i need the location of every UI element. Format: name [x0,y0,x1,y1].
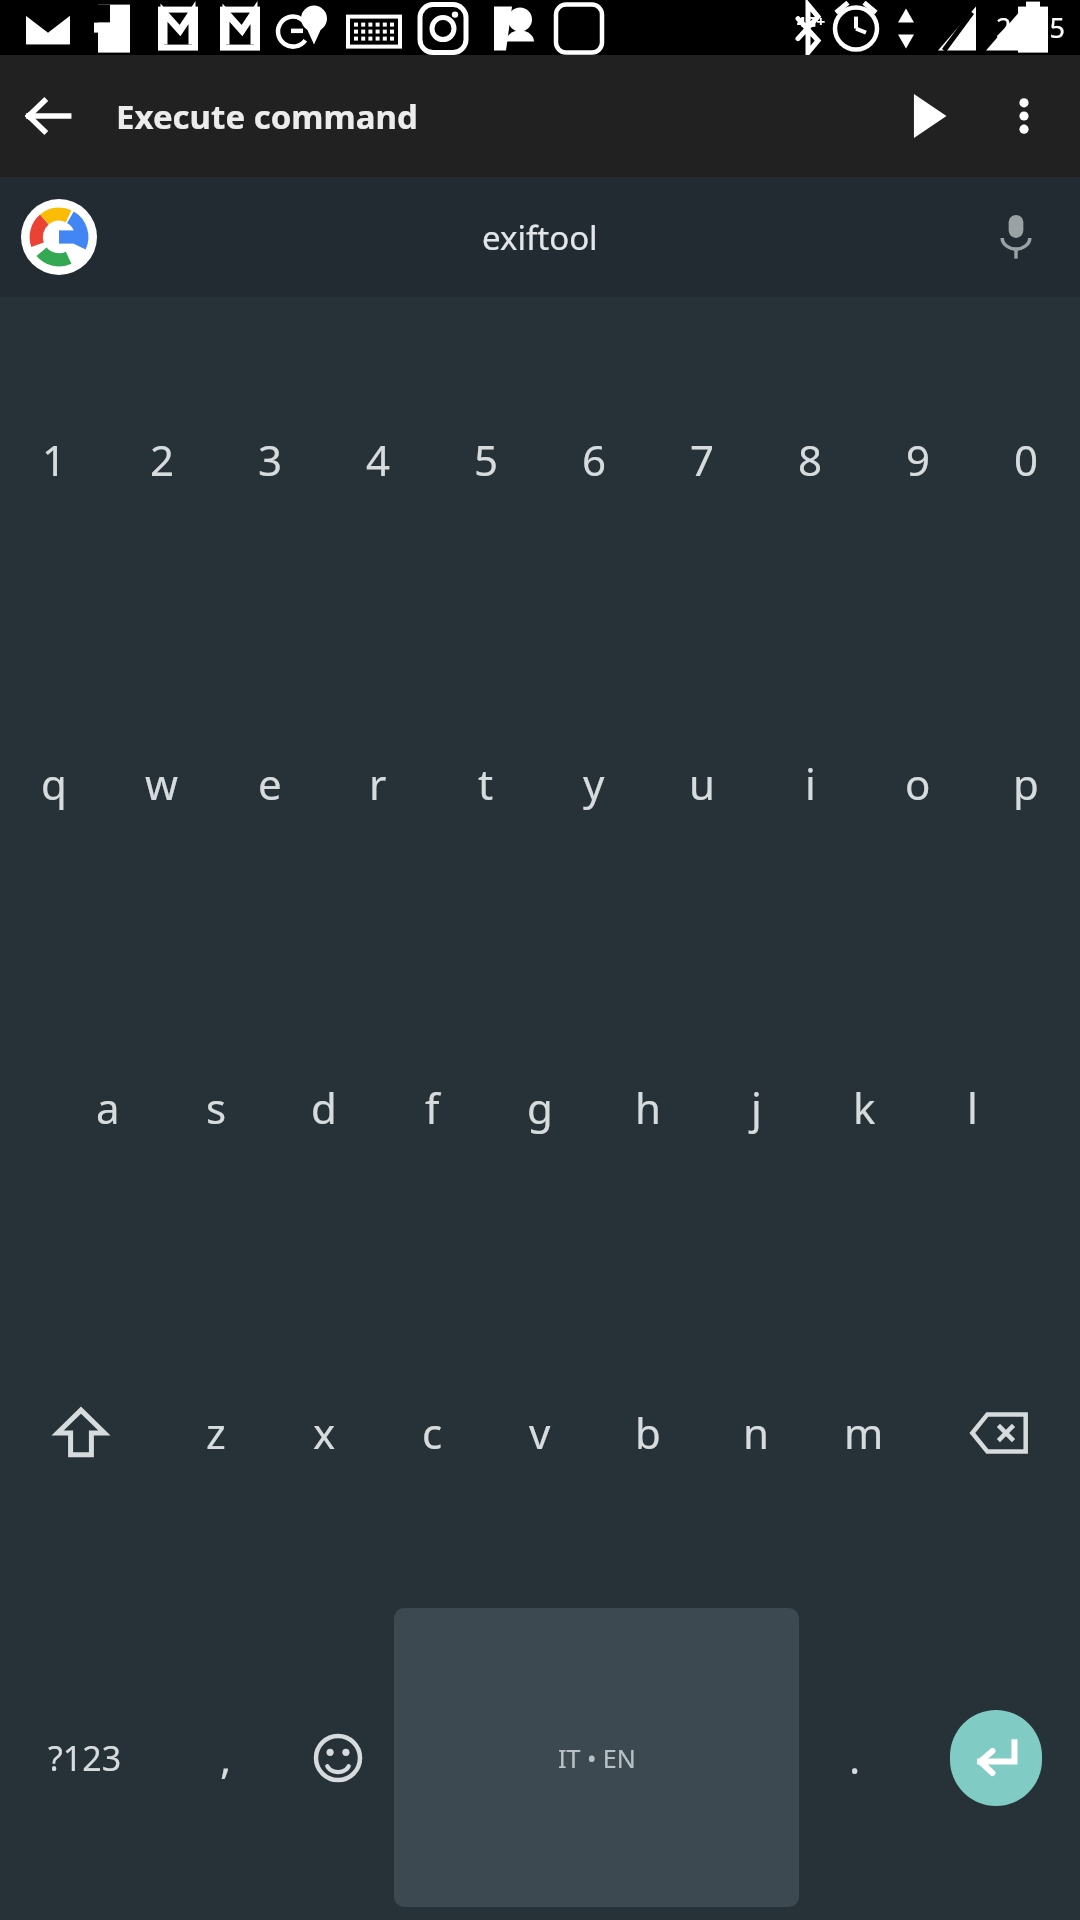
staticText: o [905,755,931,812]
button[interactable]: n [702,1270,810,1595]
button[interactable]: k [810,945,918,1270]
staticText: Execute command [116,94,418,139]
button[interactable]: exiftool [482,215,598,260]
button[interactable]: Google [20,198,98,276]
staticText: 9 [906,431,931,488]
staticText: g [527,1079,553,1136]
staticText: c [422,1404,443,1461]
staticText: 0 [1014,431,1039,488]
button[interactable]: t [432,621,540,945]
button[interactable]: e [216,621,324,945]
staticText: f [425,1079,440,1136]
button[interactable]: 2 [108,297,216,621]
staticText: 7 [690,431,715,488]
button[interactable]: 4 [324,297,432,621]
staticText: IT • EN [558,1741,636,1775]
button[interactable]: c [378,1270,486,1595]
button[interactable]: f [378,945,486,1270]
button[interactable]: 6 [540,297,648,621]
button[interactable]: j [702,945,810,1270]
button[interactable]: Emoji [282,1595,394,1920]
button[interactable]: 9 [864,297,972,621]
staticText: . [849,1729,861,1786]
staticText: y [583,755,605,812]
staticText: l [967,1079,978,1136]
staticText: a [96,1079,120,1136]
button[interactable]: Voice input [976,197,1056,277]
button[interactable]: v [486,1270,594,1595]
staticText: exiftool [482,215,598,260]
staticText: w [145,755,179,812]
button[interactable]: p [972,621,1080,945]
button[interactable]: 0 [972,297,1080,621]
button[interactable]: l [918,945,1026,1270]
button[interactable]: s [162,945,270,1270]
button[interactable]: m [810,1270,918,1595]
button[interactable]: . [799,1595,911,1920]
button[interactable]: Space [394,1608,799,1907]
button[interactable]: i [756,621,864,945]
button[interactable]: q [0,621,108,945]
staticText: u [689,755,715,812]
button[interactable]: More options [976,68,1072,164]
button[interactable]: z [162,1270,270,1595]
staticText: j [751,1079,762,1136]
staticText: x [313,1404,336,1461]
staticText: h [635,1079,661,1136]
button[interactable]: 3 [216,297,324,621]
button[interactable]: 1 [0,297,108,621]
staticText: q [41,755,67,812]
button[interactable]: Back [0,68,96,164]
button[interactable]: h [594,945,702,1270]
button[interactable]: Backspace [918,1270,1080,1595]
button[interactable]: w [108,621,216,945]
button[interactable]: 7 [648,297,756,621]
staticText: 4G+ [797,11,826,31]
staticText: s [206,1079,227,1136]
button[interactable]: a [54,945,162,1270]
staticText: 4 [366,431,391,488]
button[interactable]: 8 [756,297,864,621]
button[interactable]: o [864,621,972,945]
staticText: 1 [42,431,67,488]
staticText: b [635,1404,661,1461]
staticText: e [258,755,282,812]
staticText: 23:35 [996,9,1066,46]
button[interactable]: d [270,945,378,1270]
button[interactable]: g [486,945,594,1270]
button[interactable]: u [648,621,756,945]
button[interactable]: 5 [432,297,540,621]
staticText: t [478,755,494,812]
button[interactable]: ?123 [0,1595,170,1920]
staticText: 2 [150,431,175,488]
button[interactable]: x [270,1270,378,1595]
button[interactable]: Enter [950,1710,1042,1806]
staticText: 6 [582,431,607,488]
staticText: z [206,1404,226,1461]
button[interactable]: r [324,621,432,945]
staticText: m [844,1404,884,1461]
staticText: d [311,1079,337,1136]
button[interactable]: Shift [0,1270,162,1595]
staticText: , [220,1729,232,1786]
staticText: n [743,1404,769,1461]
staticText: 5 [474,431,499,488]
button[interactable]: b [594,1270,702,1595]
staticText: 3 [258,431,283,488]
staticText: i [805,755,816,812]
staticText: ?123 [48,1735,122,1781]
staticText: k [853,1079,876,1136]
button[interactable]: y [540,621,648,945]
button[interactable]: , [170,1595,282,1920]
staticText: r [369,755,387,812]
staticText: 8 [798,431,823,488]
staticText: v [529,1404,551,1461]
button[interactable]: Run [880,68,976,164]
staticText: p [1013,755,1039,812]
